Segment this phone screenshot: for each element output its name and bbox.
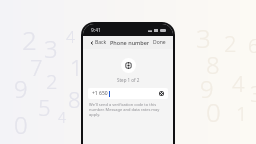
- staticText: 1: [236, 100, 248, 127]
- staticText: 7: [30, 52, 43, 82]
- staticText: We'll send a verification code to this n…: [89, 102, 167, 117]
- staticText: 3: [44, 32, 58, 65]
- staticText: 4: [58, 108, 66, 127]
- staticText: 3: [250, 78, 256, 108]
- staticText: 9: [14, 72, 28, 105]
- staticText: +1 650: [92, 90, 108, 97]
- staticText: 1: [70, 52, 83, 82]
- staticText: 0: [14, 108, 28, 141]
- staticText: 9:41: [91, 27, 101, 34]
- staticText: 2: [224, 28, 237, 58]
- staticText: Back: [95, 39, 107, 46]
- button[interactable]: Back: [89, 37, 108, 48]
- staticText: Done: [153, 39, 166, 46]
- staticText: 5: [38, 92, 51, 122]
- staticText: Step 1 of 2: [117, 77, 140, 83]
- staticText: 9: [200, 72, 214, 105]
- staticText: 6: [248, 32, 256, 59]
- button[interactable]: +1 650: [88, 88, 168, 99]
- staticText: 4: [232, 68, 245, 98]
- button[interactable]: Verify identity: [121, 58, 136, 73]
- staticText: 2: [22, 22, 37, 57]
- staticText: 8: [68, 84, 81, 114]
- staticText: 0: [206, 94, 221, 129]
- staticText: 3: [196, 20, 211, 55]
- button[interactable]: Clear: [159, 91, 164, 96]
- staticText: 8: [206, 48, 220, 81]
- button[interactable]: Done: [152, 37, 167, 48]
- staticText: 2: [46, 68, 58, 95]
- staticText: 4: [66, 26, 76, 48]
- staticText: Phone number: [110, 39, 150, 46]
